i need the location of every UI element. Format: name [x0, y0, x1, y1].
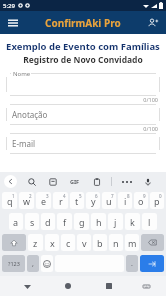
staticText: 9 — [143, 193, 146, 199]
button[interactable]: d — [41, 213, 55, 230]
staticText: 2 — [29, 193, 32, 199]
button[interactable]: z — [28, 234, 43, 251]
staticText: . — [131, 259, 133, 269]
staticText: t — [75, 195, 79, 207]
button[interactable]: w — [19, 192, 34, 209]
staticText: 6 — [95, 193, 98, 199]
staticText: b — [97, 237, 103, 249]
button[interactable] — [6, 73, 160, 96]
button[interactable]: GIF — [67, 174, 82, 189]
staticText: c — [66, 237, 71, 249]
button[interactable]: c — [61, 234, 75, 251]
button[interactable]: Home — [60, 278, 76, 294]
button[interactable]: u — [102, 192, 116, 209]
button[interactable]: a — [9, 213, 23, 230]
button[interactable]: y — [86, 192, 100, 209]
staticText: g — [79, 216, 85, 228]
button[interactable]: s — [25, 213, 39, 230]
staticText: Exemplo de Evento com Famílias — [0, 40, 166, 53]
button[interactable]: v — [77, 234, 91, 251]
button[interactable]: i — [118, 192, 132, 209]
button[interactable]: Emoji — [41, 255, 53, 272]
button[interactable]: n — [109, 234, 123, 251]
staticText: y — [91, 195, 96, 207]
staticText: p — [154, 195, 160, 207]
button[interactable]: Search — [25, 175, 38, 188]
staticText: 4 — [63, 193, 66, 199]
staticText: 0/100 — [0, 96, 158, 103]
button[interactable]: q — [2, 192, 17, 209]
button[interactable]: Backspace — [141, 234, 164, 251]
button[interactable]: . — [126, 255, 138, 272]
staticText: , — [32, 259, 34, 269]
staticText: 1 — [12, 193, 15, 199]
staticText: 0 — [159, 193, 162, 199]
staticText: Anotação — [12, 109, 48, 120]
staticText: 8 — [127, 193, 130, 199]
staticText: u — [106, 195, 112, 207]
staticText: 3 — [46, 193, 49, 199]
button[interactable]: Expand toolbar — [4, 175, 17, 188]
staticText: x — [50, 237, 55, 249]
button[interactable]: p — [150, 192, 164, 209]
staticText: q — [7, 195, 13, 207]
staticText: n — [113, 237, 119, 249]
staticText: Registro de Novo Convidado — [0, 54, 166, 66]
staticText: d — [45, 216, 51, 228]
button[interactable]: Menu — [5, 15, 21, 31]
staticText: o — [138, 195, 144, 207]
button[interactable]: Switch keyboard — [138, 278, 154, 294]
button[interactable]: m — [125, 234, 139, 251]
staticText: f — [63, 216, 67, 228]
button[interactable]: ?123 — [2, 255, 25, 272]
button[interactable]: x — [45, 234, 59, 251]
staticText: GIF — [70, 178, 80, 185]
staticText: h — [96, 216, 102, 228]
staticText: E-mail — [12, 138, 36, 149]
staticText: l — [148, 216, 151, 228]
button[interactable]: r — [53, 192, 68, 209]
staticText: 5 — [79, 193, 82, 199]
button[interactable]: Anotação — [6, 104, 160, 125]
staticText: ?123 — [8, 260, 20, 267]
staticText: w — [23, 195, 31, 207]
staticText: 5:29 — [3, 2, 15, 10]
button[interactable]: o — [134, 192, 148, 209]
staticText: m — [128, 237, 137, 249]
staticText: 7 — [111, 193, 114, 199]
button[interactable]: Recents — [101, 278, 117, 294]
staticText: j — [114, 216, 117, 228]
staticText: Nome — [13, 70, 31, 78]
button[interactable]: h — [91, 213, 106, 230]
button[interactable]: f — [57, 213, 72, 230]
staticText: r — [59, 195, 63, 207]
button[interactable]: , — [27, 255, 39, 272]
staticText: i — [124, 195, 127, 207]
button[interactable]: e — [36, 192, 51, 209]
button[interactable]: Back — [19, 278, 35, 294]
button[interactable]: More options — [120, 175, 133, 188]
staticText: z — [33, 237, 38, 249]
button[interactable]: k — [125, 213, 140, 230]
button[interactable]: Clipboard — [90, 175, 103, 188]
button[interactable]: Next field — [140, 255, 164, 272]
button[interactable]: Add guest — [145, 15, 161, 31]
staticText: 0/100 — [0, 125, 158, 132]
staticText: e — [41, 195, 47, 207]
button[interactable]: l — [142, 213, 157, 230]
button[interactable]: Voice input — [141, 175, 154, 188]
staticText: a — [13, 216, 19, 228]
button[interactable]: Shift — [2, 234, 26, 251]
staticText: k — [130, 216, 135, 228]
button[interactable]: Stickers — [46, 175, 59, 188]
button[interactable]: b — [93, 234, 107, 251]
staticText: ConfirmAki Pro — [45, 16, 121, 30]
button[interactable]: E-mail — [6, 133, 160, 154]
button[interactable]: t — [70, 192, 84, 209]
staticText: v — [82, 237, 87, 249]
button[interactable]: g — [74, 213, 89, 230]
button[interactable]: j — [108, 213, 123, 230]
staticText: s — [30, 216, 35, 228]
